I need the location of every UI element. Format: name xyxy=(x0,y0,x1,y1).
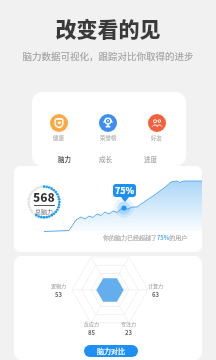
staticText: 85 xyxy=(88,328,96,337)
staticText: 荣誉榜 xyxy=(100,134,117,142)
staticText: 总脑力 xyxy=(35,207,54,216)
button[interactable]: 好友 xyxy=(141,114,173,142)
staticText: 53 xyxy=(55,290,63,299)
staticText: 脑力 xyxy=(58,154,71,163)
button[interactable]: 荣誉榜 xyxy=(92,114,124,142)
staticText: 专注力 xyxy=(121,320,137,327)
button[interactable]: 脑力 xyxy=(48,151,80,165)
staticText: 75% xyxy=(115,184,135,197)
staticText: 改变看的见 xyxy=(0,13,216,43)
staticText: 进度 xyxy=(144,154,157,163)
button[interactable]: 健康 xyxy=(43,114,75,142)
staticText: 反应力 xyxy=(84,320,100,327)
staticText: 23 xyxy=(125,328,133,337)
staticText: 脑力数据可视化，跟踪对比你取得的进步 xyxy=(0,49,216,63)
staticText: 63 xyxy=(152,290,160,299)
staticText: 健康 xyxy=(53,134,65,142)
staticText: 逻辑力 xyxy=(51,282,67,289)
staticText: 好友 xyxy=(151,134,163,142)
button[interactable]: 进度 xyxy=(134,151,166,165)
staticText: 568 xyxy=(33,188,55,205)
staticText: 脑力对比 xyxy=(97,346,125,356)
staticText: 你的脑力已经超越了75%的用户 xyxy=(103,233,188,242)
button[interactable]: 脑力对比 xyxy=(84,345,138,357)
staticText: 成长 xyxy=(99,154,112,163)
button[interactable]: 成长 xyxy=(89,151,121,165)
staticText: 计算力 xyxy=(148,282,164,289)
